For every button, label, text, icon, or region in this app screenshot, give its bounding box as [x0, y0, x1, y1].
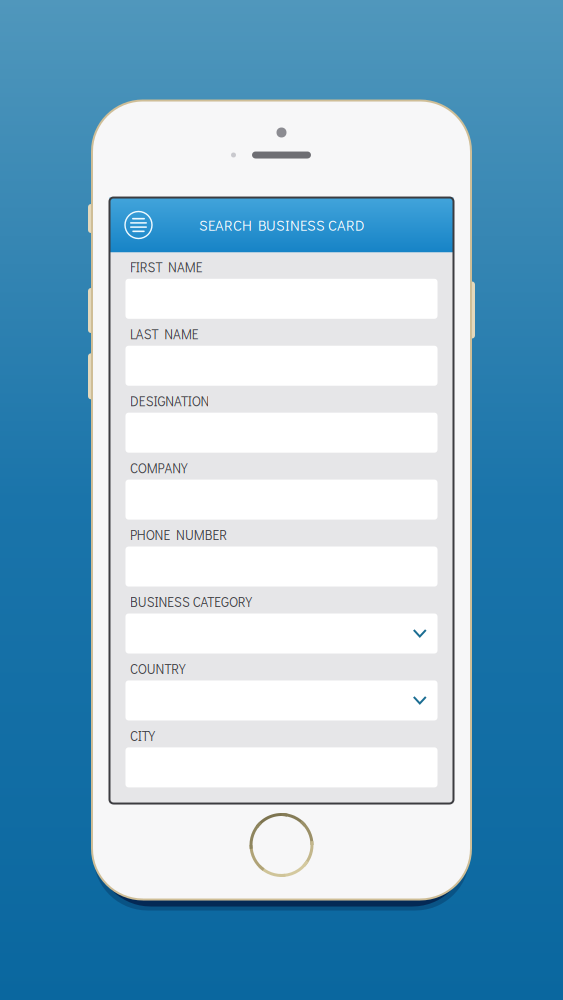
staticText: SEARCH BUSINESS CARD	[199, 215, 364, 235]
staticText: DESIGNATION	[130, 392, 209, 410]
staticText: CITY	[130, 727, 154, 744]
staticText: PHONE NUMBER	[130, 526, 227, 544]
staticText: LAST NAME	[130, 325, 199, 343]
button[interactable]	[125, 680, 437, 720]
button[interactable]: Home	[246, 810, 316, 880]
staticText: COMPANY	[130, 459, 187, 477]
button[interactable]: Menu	[116, 203, 160, 247]
staticText: FIRST NAME	[130, 258, 203, 276]
button[interactable]	[125, 613, 437, 653]
staticText: COUNTRY	[130, 660, 185, 677]
staticText: BUSINESS CATEGORY	[130, 593, 252, 611]
